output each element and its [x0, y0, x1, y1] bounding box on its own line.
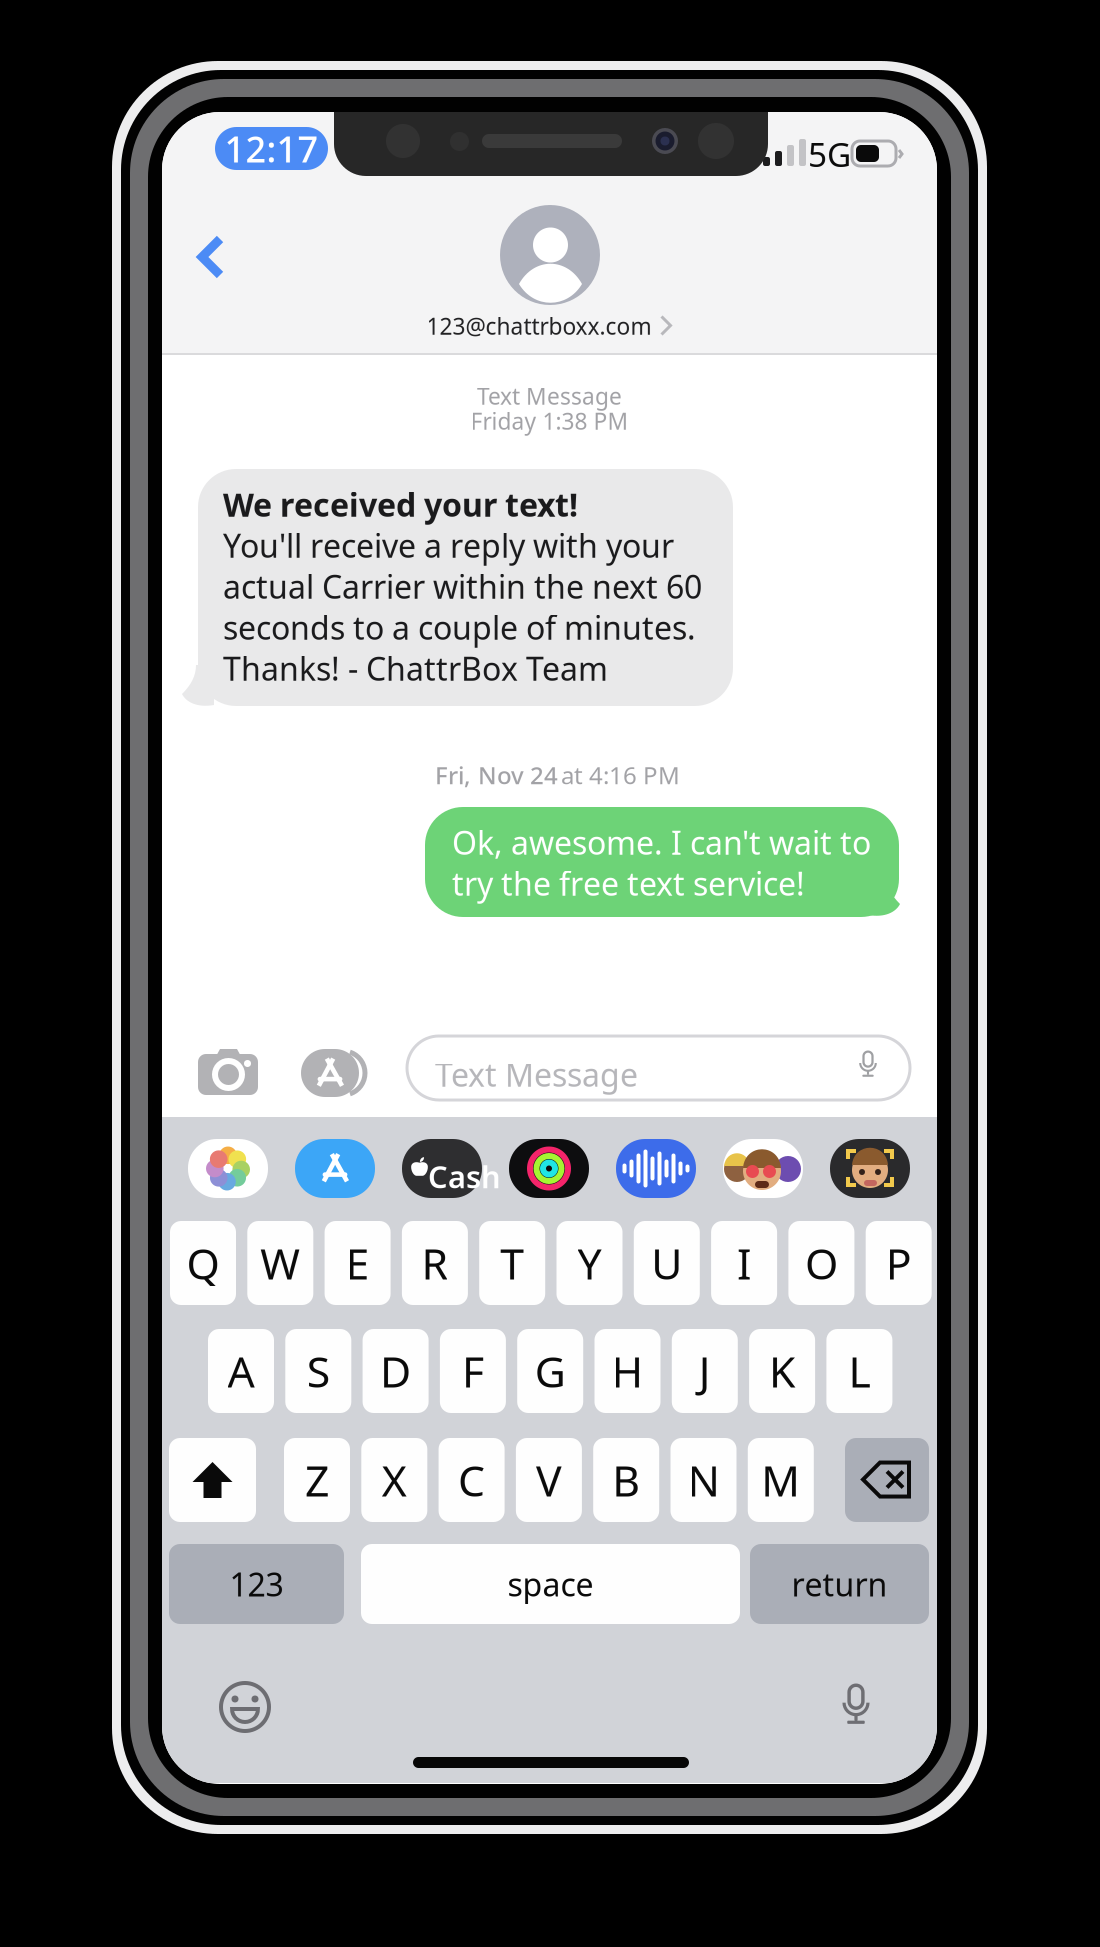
button[interactable]: Emoji keyboard [207, 1669, 283, 1745]
button[interactable]: R [402, 1221, 468, 1305]
staticText: N [687, 1452, 719, 1508]
staticText: 12:17 [224, 125, 318, 172]
button[interactable]: I [711, 1221, 777, 1305]
button[interactable]: Camera [188, 1034, 268, 1108]
button[interactable]: Memoji [830, 1139, 910, 1198]
staticText: D [380, 1343, 411, 1399]
staticText: try the free text service! [452, 862, 805, 904]
staticText: Thanks! - ChattrBox Team [223, 647, 608, 689]
staticText: 123 [229, 1563, 283, 1605]
staticText: M [761, 1452, 800, 1508]
staticText: L [848, 1343, 870, 1399]
button[interactable]: G [517, 1329, 583, 1413]
staticText: Text Message [477, 381, 622, 411]
staticText: Cash [428, 1156, 501, 1197]
staticText: H [611, 1343, 643, 1399]
staticText: actual Carrier within the next 60 [223, 565, 702, 607]
staticText: F [462, 1343, 484, 1399]
button[interactable]: H [594, 1329, 660, 1413]
staticText: S [307, 1343, 330, 1399]
button[interactable]: Back [174, 220, 248, 294]
staticText: B [612, 1452, 640, 1508]
button[interactable]: B [593, 1438, 659, 1522]
staticText: Text Message [435, 1053, 638, 1095]
staticText: 5G [808, 132, 851, 176]
button[interactable]: App Store [295, 1139, 375, 1198]
button[interactable]: Apps [296, 1036, 376, 1110]
staticText: Y [577, 1235, 601, 1291]
button[interactable]: F [440, 1329, 506, 1413]
button[interactable]: P [866, 1221, 932, 1305]
button[interactable]: N [670, 1438, 736, 1522]
button[interactable]: 123 [169, 1544, 344, 1624]
staticText: A [227, 1343, 254, 1399]
button[interactable]: A [208, 1329, 274, 1413]
staticText: You'll receive a reply with your [223, 524, 674, 566]
staticText: space [507, 1563, 593, 1605]
staticText: Ok, awesome. I can't wait to [452, 821, 871, 863]
staticText: E [346, 1235, 370, 1291]
button[interactable]: Z [284, 1438, 350, 1522]
staticText: Q [186, 1235, 219, 1291]
staticText: Friday 1:38 PM [470, 406, 628, 436]
button[interactable]: Delete [845, 1438, 929, 1522]
staticText: G [535, 1343, 566, 1399]
button[interactable]: Photos [188, 1139, 268, 1198]
button[interactable]: Stickers [723, 1139, 803, 1198]
button[interactable]: S [285, 1329, 351, 1413]
staticText: C [458, 1452, 485, 1508]
button[interactable]: Q [170, 1221, 236, 1305]
staticText: U [651, 1235, 682, 1291]
staticText: J [699, 1343, 711, 1399]
staticText: K [769, 1343, 795, 1399]
button[interactable]: E [325, 1221, 391, 1305]
button[interactable]: J [672, 1329, 738, 1413]
button[interactable]: Fitness [509, 1139, 589, 1198]
button[interactable]: space [361, 1544, 740, 1624]
button[interactable]: D [363, 1329, 429, 1413]
button[interactable]: K [749, 1329, 815, 1413]
button[interactable]: U [634, 1221, 700, 1305]
staticText: O [805, 1235, 838, 1291]
button[interactable]: C [439, 1438, 505, 1522]
button[interactable]: Contact photo [500, 205, 600, 305]
staticText: V [536, 1452, 562, 1508]
button[interactable]: T [479, 1221, 545, 1305]
button[interactable]: V [516, 1438, 582, 1522]
staticText: P [886, 1235, 912, 1291]
button[interactable]: M [748, 1438, 814, 1522]
button[interactable]: X [361, 1438, 427, 1522]
staticText: at 4:16 PM [561, 759, 680, 791]
staticText: 123@chattrboxx.com [426, 311, 651, 341]
staticText: Fri, [435, 759, 471, 791]
staticText: seconds to a couple of minutes. [223, 606, 696, 648]
staticText: R [421, 1235, 448, 1291]
staticText: T [500, 1235, 524, 1291]
button[interactable]: return [750, 1544, 929, 1624]
staticText: return [791, 1563, 887, 1605]
button[interactable]: Y [556, 1221, 622, 1305]
button[interactable]: O [788, 1221, 854, 1305]
button[interactable]: Audio Message [616, 1139, 696, 1198]
staticText: Nov 24 [478, 759, 558, 791]
staticText: W [260, 1235, 300, 1291]
button[interactable]: W [247, 1221, 313, 1305]
button[interactable]: Shift [169, 1438, 256, 1522]
button[interactable]: Dictation [818, 1667, 894, 1743]
staticText: I [737, 1235, 751, 1291]
staticText: Z [305, 1452, 329, 1508]
button[interactable]: 123@chattrboxx.com [400, 306, 700, 346]
button[interactable]: Apple Cash [402, 1139, 482, 1198]
button[interactable]: Text Message [407, 1036, 910, 1100]
staticText: We received your text! [223, 483, 578, 525]
staticText: X [382, 1452, 407, 1508]
button[interactable]: L [826, 1329, 892, 1413]
